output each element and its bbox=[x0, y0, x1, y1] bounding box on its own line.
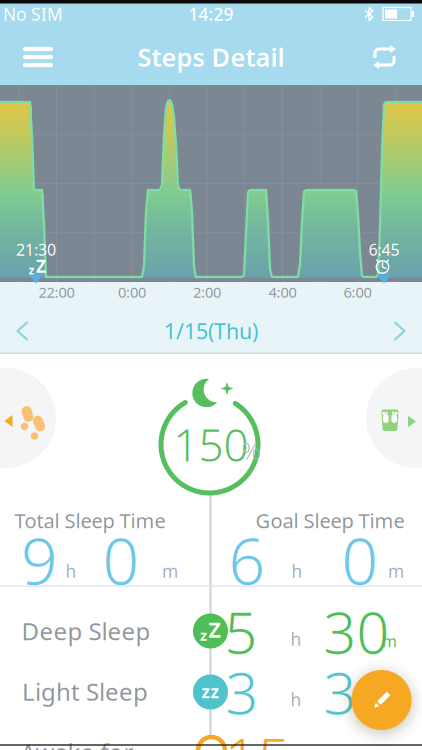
staticText: 9 bbox=[21, 517, 58, 602]
staticText: h bbox=[291, 559, 302, 582]
staticText: h bbox=[290, 688, 301, 711]
staticText: m bbox=[388, 559, 404, 582]
button[interactable]: Weight bbox=[378, 396, 422, 444]
staticText: 150 bbox=[173, 415, 248, 474]
staticText: Awake for bbox=[20, 736, 133, 750]
staticText: h bbox=[290, 627, 301, 650]
staticText: No SIM bbox=[3, 2, 63, 25]
staticText: 5 bbox=[224, 593, 257, 669]
staticText: 30 bbox=[323, 593, 389, 669]
staticText: Deep Sleep bbox=[21, 615, 150, 647]
staticText: 2:00 bbox=[193, 282, 221, 302]
staticText: Goal Sleep Time bbox=[255, 507, 404, 534]
staticText: Z bbox=[208, 615, 220, 644]
staticText: 14:29 bbox=[188, 2, 233, 25]
staticText: z bbox=[28, 262, 34, 278]
button[interactable]: Steps bbox=[0, 393, 52, 449]
staticText: Z bbox=[36, 254, 46, 277]
staticText: Light Sleep bbox=[22, 676, 148, 707]
staticText: 0:00 bbox=[118, 282, 146, 302]
staticText: Total Sleep Time bbox=[14, 507, 165, 534]
staticText: 1/15(Thu) bbox=[164, 317, 258, 345]
staticText: 22:00 bbox=[38, 282, 74, 302]
staticText: % bbox=[241, 435, 260, 466]
button[interactable]: Edit bbox=[351, 670, 411, 730]
button[interactable]: Previous day bbox=[7, 316, 37, 346]
staticText: z bbox=[200, 625, 207, 645]
staticText: 15 bbox=[224, 719, 290, 750]
staticText: 3 bbox=[225, 654, 258, 730]
staticText: m bbox=[162, 559, 178, 582]
staticText: h bbox=[65, 559, 76, 582]
button[interactable]: Refresh bbox=[366, 40, 402, 74]
staticText: 4:00 bbox=[268, 282, 296, 302]
button[interactable]: Menu bbox=[18, 40, 58, 74]
staticText: zz bbox=[201, 680, 219, 703]
staticText: 21:30 bbox=[16, 239, 56, 260]
staticText: 0 bbox=[102, 517, 139, 602]
staticText: 6 bbox=[228, 517, 265, 602]
staticText: 6:45 bbox=[368, 239, 399, 260]
button[interactable]: Next day bbox=[385, 316, 415, 346]
staticText: Steps Detail bbox=[137, 40, 284, 74]
staticText: 6:00 bbox=[343, 282, 371, 302]
staticText: 30 bbox=[323, 654, 389, 730]
staticText: 0 bbox=[341, 517, 378, 602]
staticText: m bbox=[382, 630, 397, 652]
